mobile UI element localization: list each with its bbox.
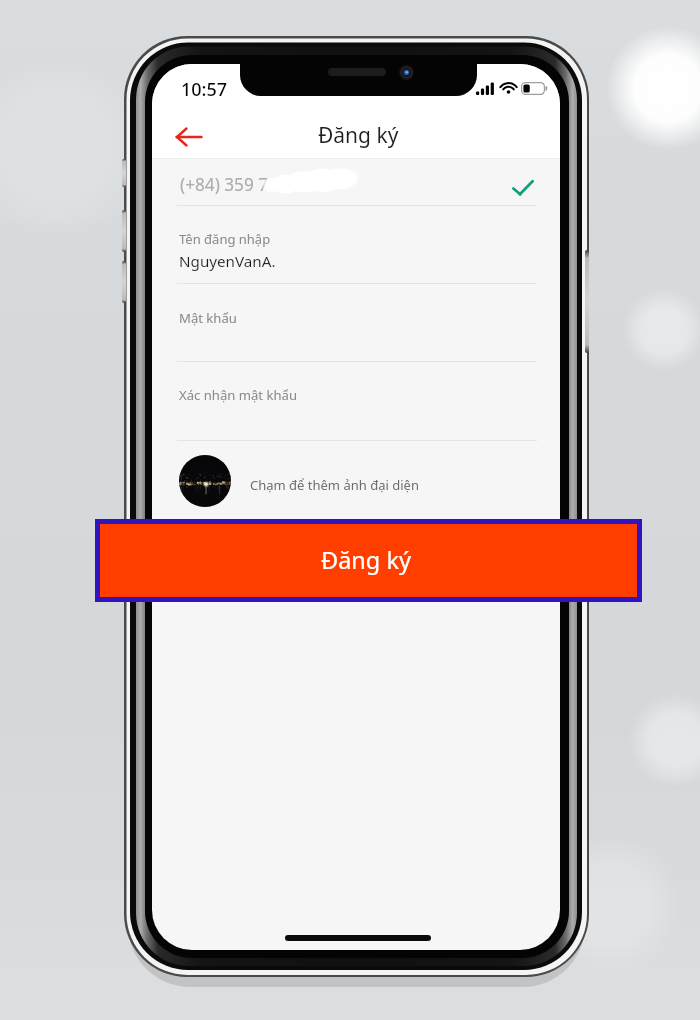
staticText: Đăng ký <box>321 544 411 576</box>
button[interactable]: Chạm để thêm ảnh đại diện <box>152 441 560 513</box>
button[interactable]: Đăng ký <box>100 524 637 597</box>
staticText: NguyenVanA. <box>179 251 276 272</box>
staticText: Mật khẩu <box>179 309 237 327</box>
button[interactable]: Tên đăng nhập <box>152 206 560 283</box>
other: Verified <box>511 176 535 200</box>
staticText: Tên đăng nhập <box>179 230 271 248</box>
staticText: Đăng ký <box>318 121 399 150</box>
button[interactable]: Mật khẩu <box>152 284 560 361</box>
staticText: (+84) 359 7 <box>180 173 269 196</box>
staticText: Xác nhận mật khẩu <box>179 386 297 404</box>
staticText: Chạm để thêm ảnh đại diện <box>250 476 419 494</box>
staticText: 10:57 <box>181 77 228 102</box>
button[interactable]: Xác nhận mật khẩu <box>152 362 560 440</box>
button[interactable]: Back <box>161 115 217 159</box>
button[interactable]: (+84) 359 7 <box>152 159 560 205</box>
